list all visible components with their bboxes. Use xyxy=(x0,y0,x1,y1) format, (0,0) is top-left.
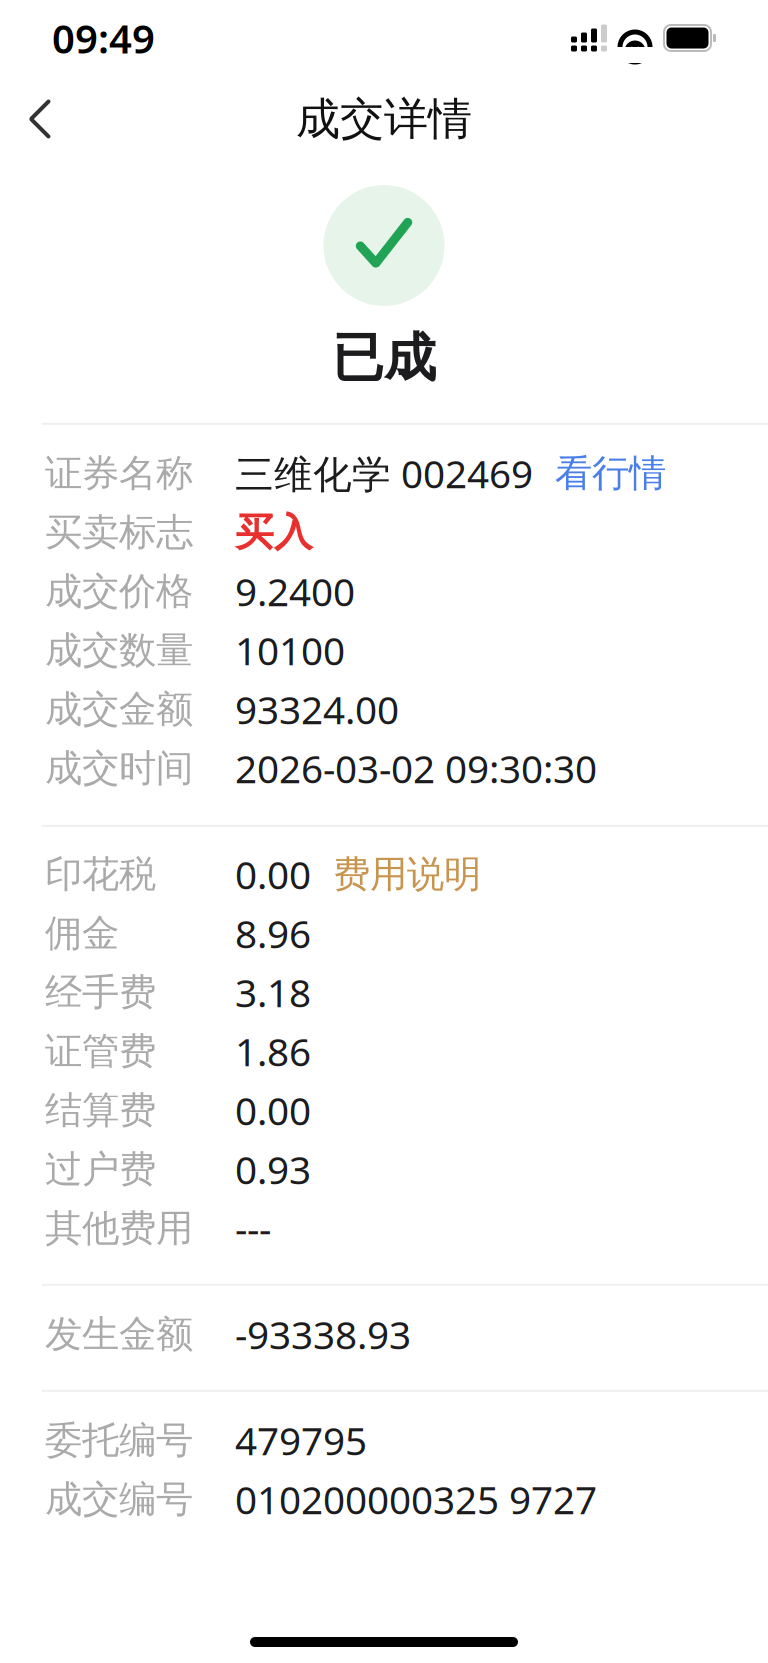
staticText: 0.00 xyxy=(235,849,311,900)
staticText: 佣金 xyxy=(45,910,119,956)
staticText: 3.18 xyxy=(235,967,311,1018)
button[interactable]: 看行情 xyxy=(551,444,670,502)
staticText: 其他费用 xyxy=(45,1205,193,1251)
staticText: 发生金额 xyxy=(45,1311,193,1357)
staticText: 479795 xyxy=(235,1415,367,1466)
staticText: 2026-03-02 09:30:30 xyxy=(235,743,597,794)
staticText: 0.93 xyxy=(235,1144,311,1195)
staticText: 9.2400 xyxy=(235,566,355,617)
staticText: 经手费 xyxy=(45,969,156,1015)
staticText: 10100 xyxy=(235,625,345,676)
staticText: 已成 xyxy=(332,326,436,390)
staticText: 费用说明 xyxy=(333,851,481,897)
staticText: 成交详情 xyxy=(296,92,472,146)
staticText: 三维化学 002469 xyxy=(235,448,533,499)
staticText: 证管费 xyxy=(45,1028,156,1074)
staticText: 成交数量 xyxy=(45,627,193,673)
staticText: 1.86 xyxy=(235,1026,311,1077)
staticText: 成交编号 xyxy=(45,1476,193,1522)
button[interactable]: 费用说明 xyxy=(329,845,485,903)
staticText: 09:49 xyxy=(52,11,155,64)
staticText: 过户费 xyxy=(45,1146,156,1192)
staticText: 证券名称 xyxy=(45,450,193,496)
staticText: 93324.00 xyxy=(235,684,399,735)
staticText: 0.00 xyxy=(235,1085,311,1136)
staticText: 成交时间 xyxy=(45,745,193,791)
staticText: 买入 xyxy=(235,509,313,556)
button[interactable]: 返回 xyxy=(0,79,80,159)
staticText: 010200000325 9727 xyxy=(235,1474,597,1525)
staticText: 8.96 xyxy=(235,908,311,959)
staticText: --- xyxy=(235,1203,271,1254)
staticText: 买卖标志 xyxy=(45,509,193,555)
staticText: -93338.93 xyxy=(235,1309,411,1360)
staticText: 成交金额 xyxy=(45,686,193,732)
staticText: 印花税 xyxy=(45,851,156,897)
staticText: 结算费 xyxy=(45,1087,156,1133)
staticText: 看行情 xyxy=(555,450,666,496)
staticText: 委托编号 xyxy=(45,1417,193,1463)
staticText: 成交价格 xyxy=(45,568,193,614)
